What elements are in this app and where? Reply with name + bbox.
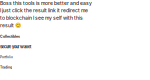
staticText: Trading (0, 65, 12, 69)
staticText: Secure your Wallet (0, 45, 31, 49)
staticText: Boss this tools is more better and easy … (0, 0, 92, 28)
staticText: Portfolio (0, 55, 13, 59)
staticText: Collectibles (0, 34, 20, 39)
